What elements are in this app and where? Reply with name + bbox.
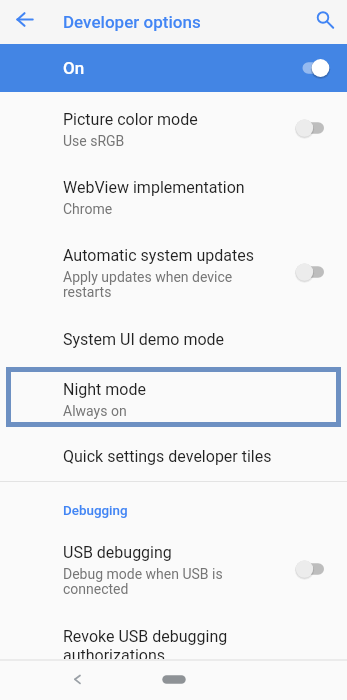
staticText: Always on [63,404,127,419]
staticText: Revoke USB debugging authorizations [63,627,283,664]
button[interactable]: USB debugging [0,525,347,609]
button[interactable]: Toggle [299,252,347,292]
button[interactable]: Back [61,663,91,693]
button[interactable]: Automatic system updates [0,228,347,312]
staticText: WebView implementation [63,178,245,199]
button[interactable] [11,372,336,422]
staticText: connected [63,582,129,597]
button[interactable]: Toggle [299,108,347,148]
button[interactable]: WebView implementation [0,160,347,228]
staticText: Apply updates when device [63,270,233,285]
button[interactable]: Back [9,4,41,36]
button[interactable]: Revoke USB debugging authorizations [0,609,347,677]
staticText: System UI demo mode [63,330,225,351]
button[interactable]: Search [307,1,339,33]
button[interactable]: Home [144,665,204,693]
button[interactable]: Picture color mode [0,92,347,160]
button[interactable]: Toggle developer options [299,48,347,88]
staticText: Developer options [63,12,201,32]
staticText: Debugging [63,503,128,519]
button[interactable]: On [0,44,347,92]
button[interactable]: System UI demo mode [0,312,347,362]
staticText: restarts [63,285,112,300]
staticText: Quick settings developer tiles [63,447,272,468]
staticText: Chrome [63,202,113,217]
staticText: On [63,58,85,78]
staticText: USB debugging [63,543,172,564]
staticText: Automatic system updates [63,246,254,267]
staticText: Night mode [63,380,146,401]
staticText: Use sRGB [63,134,125,149]
staticText: Debug mode when USB is [63,567,223,582]
button[interactable]: Quick settings developer tiles [0,429,347,481]
staticText: Picture color mode [63,110,198,131]
button[interactable]: Toggle [299,549,347,589]
